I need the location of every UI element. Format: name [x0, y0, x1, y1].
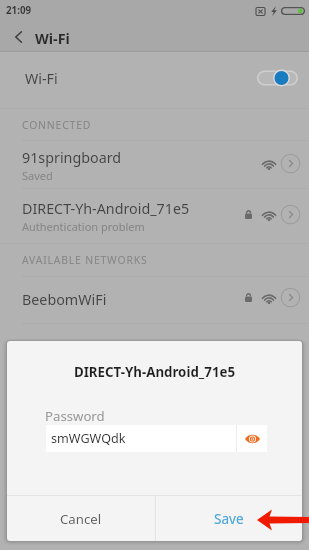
staticText: Wi-Fi [25, 69, 58, 88]
button[interactable]: DIRECT-Yh-Android_71e5 [0, 189, 309, 243]
button[interactable]: Wi-Fi [0, 52, 309, 104]
button[interactable]: Network details [280, 153, 301, 174]
button[interactable]: Show password [237, 425, 267, 452]
button[interactable]: Save [156, 496, 302, 541]
button[interactable]: Wi-Fi on [257, 67, 298, 89]
staticText: Saved [22, 168, 53, 183]
staticText: Cancel [60, 510, 102, 528]
button[interactable]: smWGWQdk [46, 425, 236, 452]
button[interactable]: BeebomWiFi [0, 276, 309, 323]
button[interactable]: Back [4, 23, 32, 51]
staticText: 21:09 [6, 4, 32, 17]
button[interactable]: Network details [280, 287, 301, 308]
staticText: smWGWQdk [51, 430, 126, 447]
staticText: Authentication problem [22, 219, 145, 234]
button[interactable]: Network details [280, 204, 301, 225]
staticText: Save [214, 509, 244, 528]
staticText: 91springboard [22, 148, 122, 167]
staticText: CONNECTED [22, 118, 92, 132]
staticText: Password [45, 407, 105, 425]
staticText: AVAILABLE NETWORKS [22, 253, 148, 267]
button[interactable]: Cancel [7, 496, 155, 541]
staticText: DIRECT-Yh-Android_71e5 [22, 199, 190, 218]
staticText: BeebomWiFi [22, 290, 107, 309]
staticText: Wi-Fi [35, 29, 70, 48]
button[interactable]: 91springboard [0, 141, 309, 189]
staticText: DIRECT-Yh-Android_71e5 [7, 363, 302, 381]
